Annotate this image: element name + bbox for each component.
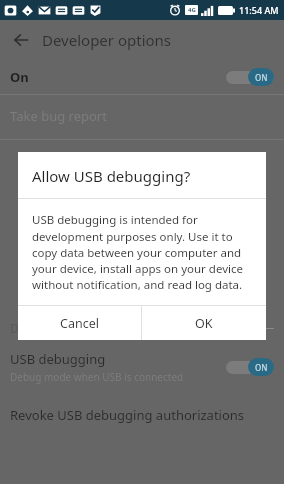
button[interactable]: Back — [0, 20, 284, 60]
staticText: 11:54 AM — [239, 4, 279, 16]
staticText: Developer options — [42, 30, 172, 50]
staticText: Cancel — [60, 315, 99, 332]
button[interactable]: ON — [226, 358, 274, 376]
staticText: Allow USB debugging? — [32, 166, 191, 186]
staticText: USB debugging is intended for developmen… — [32, 212, 254, 292]
button[interactable]: OK — [142, 306, 266, 340]
staticText: Take bug report — [10, 107, 107, 125]
staticText: ON — [255, 72, 268, 83]
button[interactable]: Back — [10, 29, 32, 51]
staticText: ON — [255, 362, 268, 373]
staticText: USB debugging — [10, 350, 106, 368]
button[interactable]: ON — [226, 68, 274, 86]
button[interactable]: Cancel — [18, 306, 141, 340]
staticText: Debugging — [10, 320, 73, 336]
button[interactable]: USB debugging — [0, 350, 284, 384]
button[interactable]: On — [0, 60, 284, 94]
staticText: OK — [195, 315, 213, 332]
staticText: On — [10, 68, 29, 86]
staticText: Debug mode when USB is connected — [10, 370, 184, 384]
button[interactable]: Revoke USB debugging authorizations — [0, 406, 284, 424]
staticText: 4G — [188, 6, 196, 14]
